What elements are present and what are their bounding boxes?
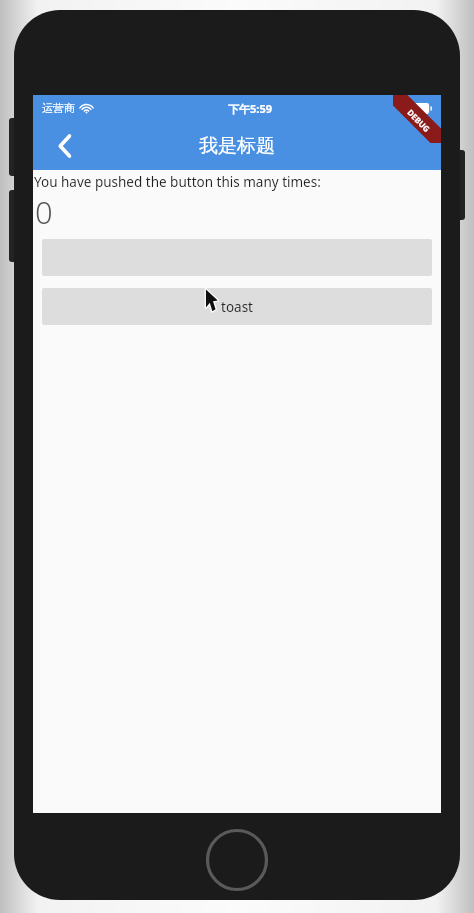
staticText: 0 — [35, 191, 53, 233]
staticText: 下午5:59 — [228, 101, 272, 116]
button[interactable]: toast — [42, 288, 432, 325]
staticText: DEBUG — [405, 107, 433, 134]
staticText: 运营商 — [42, 101, 75, 115]
staticText: toast — [221, 298, 253, 316]
staticText: 我是标题 — [199, 134, 275, 158]
button[interactable]: Back — [45, 126, 85, 166]
staticText: You have pushed the button this many tim… — [34, 173, 321, 191]
